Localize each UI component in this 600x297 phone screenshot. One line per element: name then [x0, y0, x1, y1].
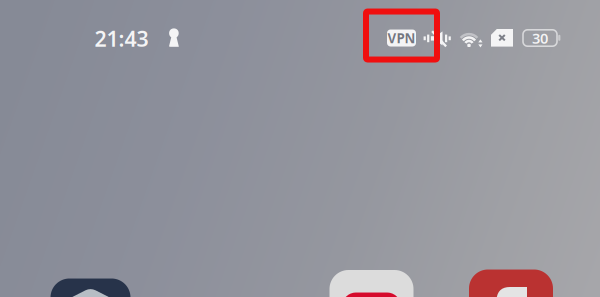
button[interactable]: App — [329, 270, 413, 297]
staticText: VPN — [387, 29, 415, 47]
button[interactable]: App — [50, 278, 130, 297]
staticText: 30 — [532, 28, 548, 48]
button[interactable]: App — [469, 269, 553, 297]
staticText: 21:43 — [94, 24, 148, 53]
